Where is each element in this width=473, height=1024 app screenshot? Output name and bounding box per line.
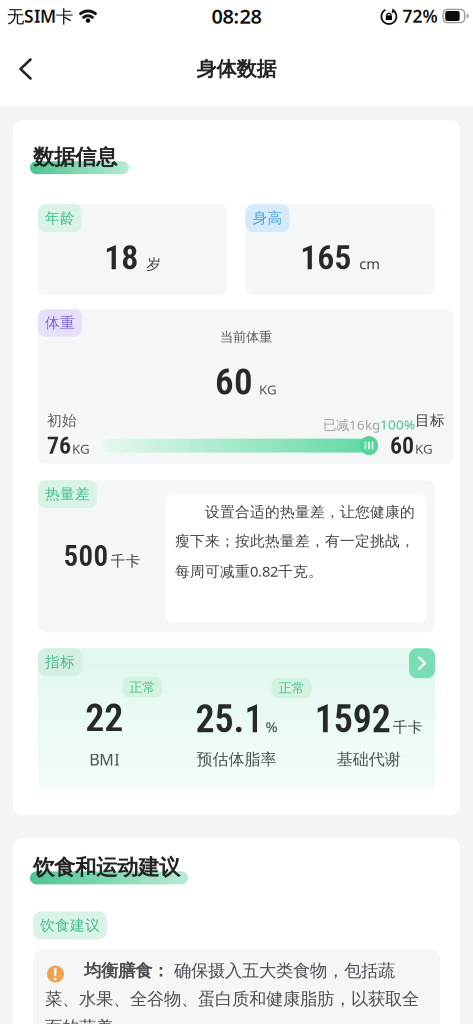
staticText: KG (259, 380, 277, 398)
staticText: 正常 (129, 679, 155, 695)
staticText: 初始 (47, 411, 77, 429)
staticText: 岁 (146, 255, 161, 273)
staticText: 25.1 (195, 697, 263, 741)
staticText: 已减16kg (323, 416, 380, 433)
staticText: 76 (47, 431, 71, 460)
staticText: 饮食和运动建议 (33, 854, 180, 880)
staticText: 体重 (45, 314, 75, 332)
button[interactable]: 更多指标 (409, 648, 435, 678)
staticText: 当前体重 (220, 329, 272, 345)
staticText: 目标 (415, 411, 445, 429)
staticText: 数据信息 (33, 144, 117, 170)
staticText: KG (415, 440, 433, 457)
staticText: 基础代谢 (337, 749, 401, 769)
staticText: 饮食建议 (40, 916, 100, 934)
staticText: 设置合适的热量差，让您健康的瘦下来；按此热量差，有一定挑战，每周可减重0.82千… (175, 503, 415, 581)
staticText: 72% (402, 4, 437, 27)
staticText: 60 (390, 431, 414, 460)
staticText: 60 (215, 360, 253, 403)
staticText: 无SIM卡 (7, 4, 73, 27)
staticText: 1592 (315, 697, 391, 741)
staticText: 年龄 (45, 209, 75, 227)
staticText: 千卡 (393, 718, 423, 736)
staticText: 千卡 (110, 552, 140, 570)
staticText: 08:28 (211, 3, 261, 29)
staticText: cm (359, 254, 380, 273)
staticText: 100% (380, 416, 415, 433)
staticText: 热量差 (45, 485, 90, 503)
staticText: 正常 (278, 680, 304, 696)
staticText: 预估体脂率 (196, 749, 276, 769)
staticText: KG (72, 440, 90, 457)
staticText: % (265, 717, 277, 736)
staticText: 均衡膳食： 确保摄入五大类食物，包括蔬菜、水果、全谷物、蛋白质和健康脂肪，以获取… (45, 958, 419, 1024)
staticText: ! (53, 963, 58, 985)
staticText: 18 (104, 238, 138, 278)
button[interactable]: 返回 (0, 49, 34, 88)
staticText: BMI (89, 749, 119, 770)
staticText: 身高 (252, 209, 282, 227)
staticText: 165 (300, 238, 351, 278)
staticText: 22 (85, 696, 123, 741)
staticText: 指标 (45, 653, 75, 671)
staticText: 身体数据 (196, 57, 276, 81)
staticText: 500 (63, 539, 108, 573)
